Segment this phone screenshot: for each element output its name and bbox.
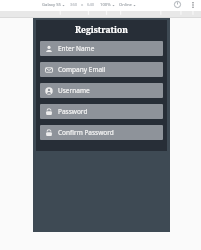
staticText: Registration xyxy=(36,24,167,36)
staticText: 640 xyxy=(87,2,95,8)
button[interactable]: Galaxy S5 xyxy=(42,2,65,8)
staticText: Enter Name xyxy=(58,44,95,53)
staticText: Galaxy S5 xyxy=(42,2,61,8)
button[interactable]: 360 xyxy=(70,2,78,8)
staticText: Confirm Password xyxy=(58,128,114,137)
staticText: Password xyxy=(58,107,88,116)
staticText: x xyxy=(81,2,84,8)
button[interactable]: Enter Name xyxy=(40,41,163,56)
button[interactable]: Rotate device xyxy=(173,0,182,9)
button[interactable]: Company Email xyxy=(40,62,163,77)
button[interactable]: x xyxy=(81,2,84,8)
button[interactable]: Confirm Password xyxy=(40,125,163,140)
staticText: 360 xyxy=(70,2,78,8)
staticText: Online xyxy=(119,2,132,8)
button[interactable]: 640 xyxy=(87,2,95,8)
button[interactable]: Username xyxy=(40,83,163,98)
button[interactable]: Online xyxy=(119,2,136,8)
staticText: Company Email xyxy=(58,65,106,74)
staticText: Username xyxy=(58,86,90,95)
button[interactable]: Password xyxy=(40,104,163,119)
staticText: 100% xyxy=(100,2,111,8)
button[interactable]: 100% xyxy=(100,2,115,8)
button[interactable]: More options xyxy=(188,0,197,9)
